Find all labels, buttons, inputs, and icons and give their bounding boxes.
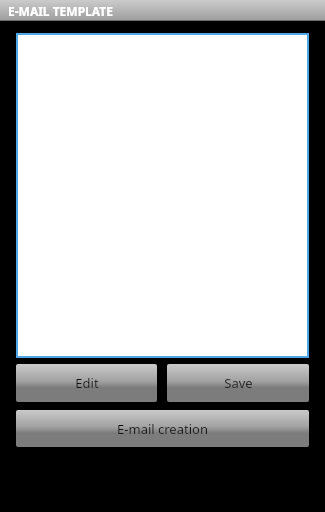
staticText: E-MAIL TEMPLATE xyxy=(8,3,113,19)
button[interactable]: Edit xyxy=(16,364,157,402)
button[interactable]: E-mail creation xyxy=(16,410,309,447)
staticText: Save xyxy=(224,374,253,392)
staticText: E-mail creation xyxy=(117,420,208,438)
button[interactable]: Save xyxy=(167,364,309,402)
staticText: Edit xyxy=(75,374,99,392)
